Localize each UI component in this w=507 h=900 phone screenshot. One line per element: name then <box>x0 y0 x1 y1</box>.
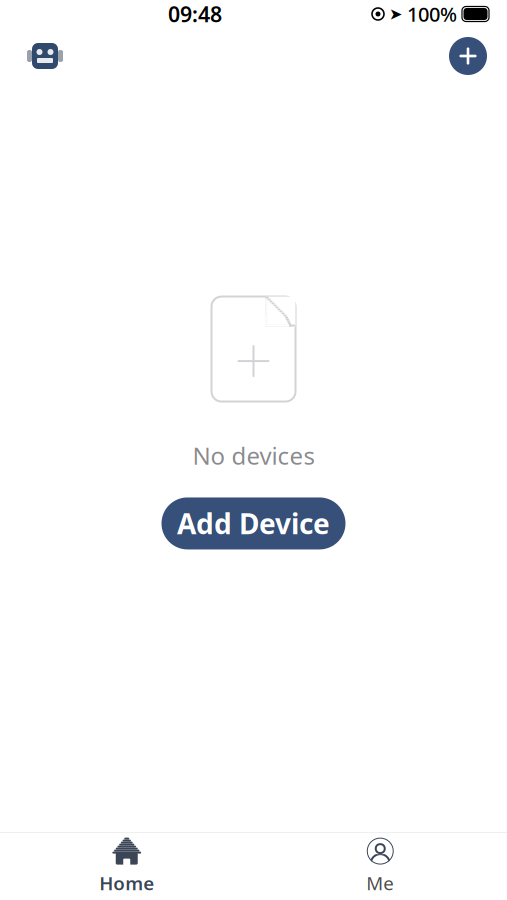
staticText: 09:48 <box>168 0 222 28</box>
staticText: Me <box>366 871 394 895</box>
staticText: 100% <box>407 1 457 27</box>
staticText: Home <box>99 871 154 895</box>
staticText: ➤ <box>389 5 402 23</box>
button[interactable]: Home <box>0 830 253 900</box>
button[interactable]: Me <box>253 830 507 900</box>
staticText: No devices <box>192 440 314 471</box>
staticText: Add Device <box>177 505 330 542</box>
button[interactable]: Assistant <box>20 35 70 77</box>
button[interactable]: Add <box>449 37 487 75</box>
button[interactable]: Add Device <box>161 497 345 549</box>
